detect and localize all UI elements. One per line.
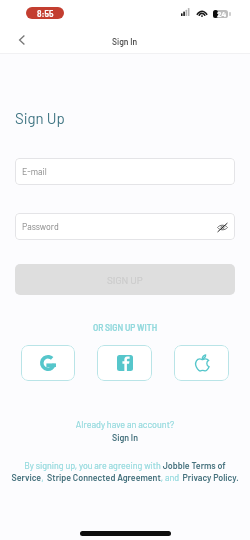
button[interactable]: By signing up, you are agreeing with Job… (11, 460, 239, 482)
staticText: SIGN UP (107, 274, 143, 286)
staticText: Already have an account? (0, 419, 250, 430)
staticText: 8:55 (37, 8, 54, 18)
staticText: Sign Up (15, 109, 65, 127)
button[interactable]: Sign In (0, 432, 250, 443)
staticText: E-mail (22, 166, 47, 177)
button[interactable]: Password (15, 213, 235, 240)
button[interactable]: Back (11, 26, 33, 53)
button[interactable]: Sign up with Google (21, 345, 75, 381)
staticText: OR SIGN UP WITH (0, 322, 250, 332)
staticText: Password (22, 221, 59, 232)
button[interactable]: Sign up with Apple (174, 345, 229, 381)
staticText: 24 (217, 9, 227, 19)
staticText: Sign In (112, 36, 138, 46)
button[interactable]: E-mail (15, 158, 235, 185)
button[interactable]: Show password (215, 220, 229, 234)
button[interactable]: Sign up with Facebook (97, 345, 152, 381)
